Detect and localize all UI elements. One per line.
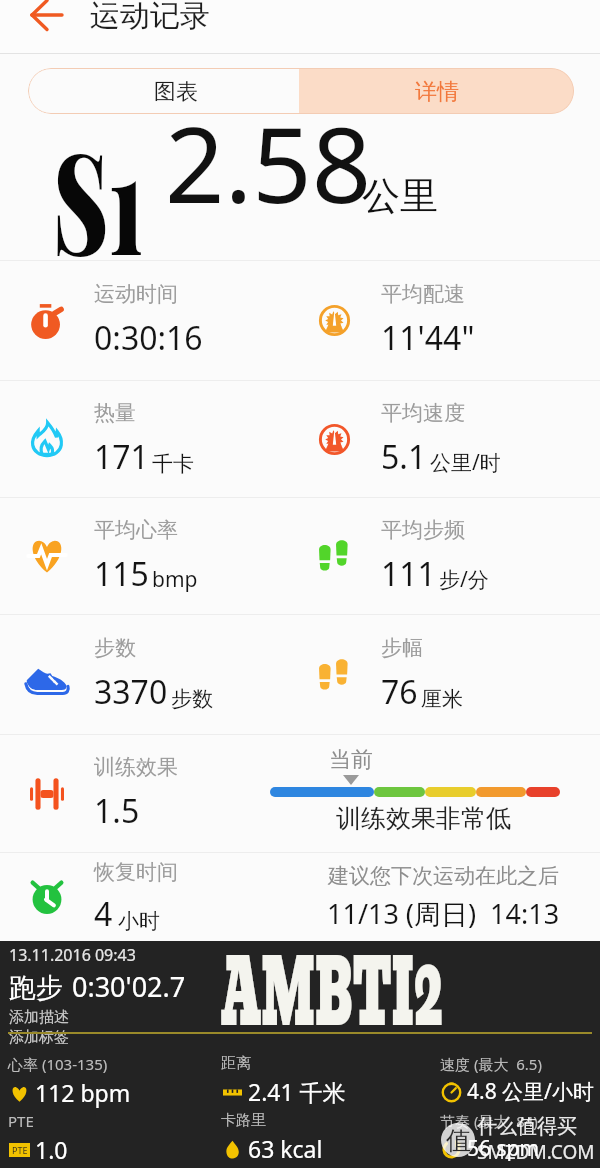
staticText: 心率 (103-135) <box>8 1054 108 1074</box>
staticText: 步幅 <box>381 635 423 661</box>
button[interactable]: 恢复时间 <box>0 853 600 941</box>
button[interactable]: 详情 <box>299 68 574 114</box>
staticText: 115 <box>94 552 149 596</box>
staticText: 图表 <box>154 78 198 106</box>
staticText: 11/13 (周日) 14:13 <box>327 895 560 932</box>
button[interactable]: 训练效果 <box>0 735 600 852</box>
staticText: 速度 (最大 6.5) <box>440 1054 542 1074</box>
staticText: 63 kcal <box>248 1133 323 1164</box>
staticText: 111 <box>381 552 436 596</box>
staticText: 1.5 <box>94 789 140 833</box>
staticText: 2.41 千米 <box>248 1076 346 1107</box>
staticText: 公里 <box>362 172 438 220</box>
staticText: 热量 <box>94 400 136 426</box>
staticText: 步/分 <box>439 565 489 594</box>
staticText: 56 spm <box>467 1134 540 1163</box>
staticText: 厘米 <box>421 686 463 712</box>
staticText: PTE <box>8 1111 34 1131</box>
button[interactable]: 平均心率 <box>0 498 600 614</box>
staticText: 小时 <box>118 908 160 934</box>
staticText: 添加标签 <box>9 1028 69 1047</box>
staticText: 3370 <box>94 670 168 714</box>
staticText: 值 <box>446 1125 471 1156</box>
staticText: 2.58 <box>165 92 372 234</box>
staticText: 4 <box>94 892 113 936</box>
staticText: S1 <box>53 104 144 291</box>
staticText: 4.8 公里/小时 <box>467 1077 594 1106</box>
staticText: 平均心率 <box>94 517 178 543</box>
button[interactable]: 步数 <box>0 615 600 734</box>
staticText: 0:30'02.7 <box>72 968 186 1005</box>
staticText: AMBTI2 <box>221 921 443 1066</box>
staticText: 训练效果 <box>94 754 178 780</box>
staticText: 距离 <box>221 1054 251 1073</box>
staticText: 13.11.2016 09:43 <box>9 944 136 966</box>
button[interactable]: Back <box>20 0 74 54</box>
staticText: SMZDM.COM <box>477 1139 595 1165</box>
staticText: 跑步 <box>9 971 63 1005</box>
staticText: 建议您下次运动在此之后 <box>328 863 559 889</box>
staticText: 76 <box>381 670 418 714</box>
button[interactable]: 图表 <box>28 68 299 114</box>
staticText: 步数 <box>171 686 213 712</box>
staticText: bmp <box>152 565 198 594</box>
staticText: 训练效果非常低 <box>336 803 511 834</box>
staticText: 1.0 <box>35 1134 68 1165</box>
staticText: 0:30:16 <box>94 316 203 360</box>
staticText: 11'44" <box>381 316 475 360</box>
staticText: 步数 <box>94 635 136 661</box>
staticText: 5.1 <box>381 435 427 479</box>
staticText: 171 <box>94 435 149 479</box>
staticText: 平均步频 <box>381 517 465 543</box>
button[interactable]: 运动时间 <box>0 261 600 380</box>
staticText: 运动记录 <box>90 0 210 35</box>
staticText: 千卡 <box>152 451 194 477</box>
staticText: 112 bpm <box>35 1077 131 1108</box>
staticText: 添加描述 <box>9 1008 69 1027</box>
staticText: 当前 <box>329 746 373 774</box>
staticText: 平均速度 <box>381 400 465 426</box>
staticText: 公里/时 <box>430 448 501 477</box>
staticText: 卡路里 <box>221 1111 266 1130</box>
staticText: 平均配速 <box>381 281 465 307</box>
staticText: 节奏 (最大 84) <box>440 1111 538 1131</box>
staticText: 运动时间 <box>94 281 178 307</box>
staticText: 恢复时间 <box>94 859 178 885</box>
staticText: PTE <box>12 1144 28 1156</box>
staticText: 什么值得买 <box>477 1114 577 1139</box>
button[interactable]: 热量 <box>0 381 600 497</box>
staticText: 详情 <box>415 78 459 106</box>
